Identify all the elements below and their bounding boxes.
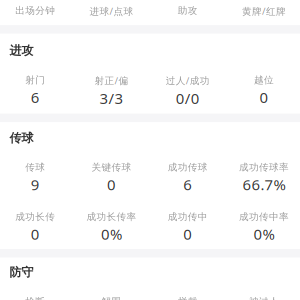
button[interactable]: 成功传球率 (226, 161, 300, 195)
button[interactable]: 拦截 (150, 295, 226, 300)
staticText: 助攻 (178, 4, 198, 17)
staticText: 0% (101, 224, 122, 244)
staticText: 0 (259, 87, 268, 107)
button[interactable]: 解围 (73, 295, 149, 300)
button[interactable]: 成功长传 (0, 211, 73, 244)
staticText: 进攻 (9, 43, 33, 58)
staticText: 成功传球率 (239, 161, 289, 173)
staticText: 0 (31, 224, 40, 244)
button[interactable]: 黄牌/红牌 (226, 4, 300, 18)
button[interactable]: 传球 (0, 161, 73, 195)
button[interactable]: 射门 (0, 74, 73, 107)
staticText: 关键传球 (91, 161, 131, 173)
button[interactable]: 抢断 (0, 295, 73, 300)
button[interactable]: 关键传球 (73, 161, 149, 195)
button[interactable]: 成功传球 (150, 161, 226, 195)
staticText: 0% (253, 224, 274, 244)
staticText: 过人/成功 (166, 74, 210, 87)
staticText: 成功传中 (168, 211, 208, 223)
staticText: 防守 (9, 265, 33, 280)
staticText: 抢断 (25, 295, 45, 300)
button[interactable]: 射正/偏 (73, 74, 149, 108)
staticText: 进球/点球 (89, 4, 133, 18)
staticText: 黄牌/红牌 (242, 4, 286, 18)
staticText: 0 (107, 174, 116, 195)
staticText: 出场分钟 (15, 4, 55, 17)
button[interactable]: 出场分钟 (0, 4, 73, 17)
staticText: 0 (183, 224, 192, 244)
staticText: 0/0 (176, 88, 200, 108)
staticText: 拦截 (178, 295, 198, 300)
staticText: 越位 (254, 74, 274, 86)
staticText: 被过人 (249, 295, 279, 300)
staticText: 传球 (9, 130, 33, 145)
button[interactable]: 成功传中率 (226, 211, 300, 244)
staticText: 传球 (25, 161, 45, 173)
staticText: 射正/偏 (94, 74, 128, 87)
staticText: 成功传球 (168, 161, 208, 173)
button[interactable]: 成功传中 (150, 211, 226, 244)
button[interactable]: 过人/成功 (150, 74, 226, 108)
button[interactable]: 助攻 (150, 4, 226, 17)
staticText: 3/3 (99, 88, 123, 108)
staticText: 成功长传率 (86, 211, 136, 223)
button[interactable]: 被过人 (226, 295, 300, 300)
staticText: 6 (183, 174, 192, 195)
staticText: 成功长传 (15, 211, 55, 223)
button[interactable]: 越位 (226, 74, 300, 107)
staticText: 成功传中率 (239, 211, 289, 223)
staticText: 66.7% (242, 174, 285, 195)
button[interactable]: 进球/点球 (73, 4, 149, 18)
button[interactable]: 成功长传率 (73, 211, 149, 244)
staticText: 9 (31, 174, 40, 195)
staticText: 解围 (101, 295, 121, 300)
staticText: 射门 (25, 74, 45, 86)
staticText: 6 (31, 87, 40, 107)
